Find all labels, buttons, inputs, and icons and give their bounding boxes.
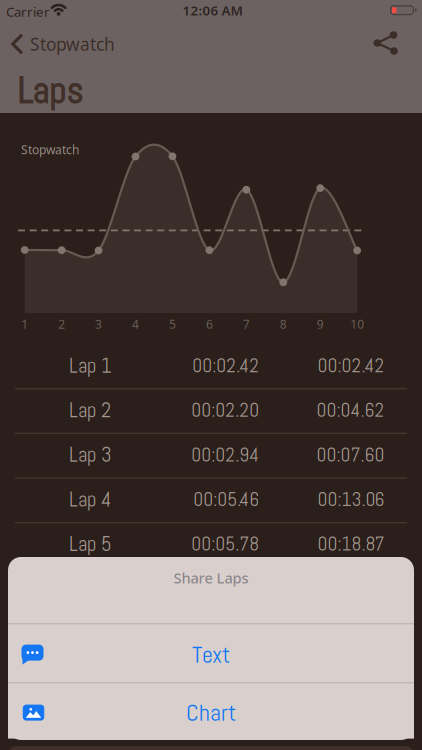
staticText: 00:02.20 (191, 398, 259, 422)
staticText: 3 (95, 316, 102, 332)
staticText: 8 (280, 316, 287, 332)
staticText: Chart (186, 697, 236, 728)
staticText: 00:02.94 (191, 442, 259, 467)
staticText: Lap 5 (69, 531, 112, 557)
staticText: 00:05.46 (193, 487, 259, 512)
staticText: 00:05.78 (191, 532, 259, 556)
staticText: Stopwatch (21, 141, 79, 157)
staticText: Text (192, 639, 230, 670)
staticText: 6 (206, 316, 213, 332)
staticText: 00:04.62 (316, 398, 384, 422)
button[interactable]: Share (372, 30, 400, 56)
staticText: 00:02.42 (317, 353, 384, 378)
staticText: 00:13.06 (317, 487, 384, 512)
staticText: 10 (350, 316, 364, 332)
staticText: 12:06 AM (182, 1, 242, 19)
staticText: 1 (21, 316, 28, 332)
staticText: 5 (169, 316, 176, 332)
staticText: Stopwatch (30, 32, 115, 55)
staticText: 00:18.87 (317, 532, 384, 556)
staticText: Carrier (6, 3, 50, 20)
staticText: 9 (317, 316, 324, 332)
staticText: Lap 1 (69, 352, 112, 379)
staticText: 4 (132, 316, 139, 332)
staticText: Lap 3 (69, 442, 112, 468)
staticText: 7 (243, 316, 250, 332)
button[interactable]: Chart (8, 687, 414, 739)
staticText: Lap 4 (69, 486, 111, 512)
staticText: Laps (17, 68, 83, 114)
staticText: 00:02.42 (192, 353, 259, 378)
staticText: Share Laps (173, 568, 248, 588)
button[interactable]: Back (8, 22, 126, 66)
staticText: 2 (58, 316, 65, 332)
button[interactable]: Text (8, 626, 414, 684)
staticText: Lap 2 (69, 397, 111, 423)
staticText: 00:07.60 (316, 442, 384, 467)
